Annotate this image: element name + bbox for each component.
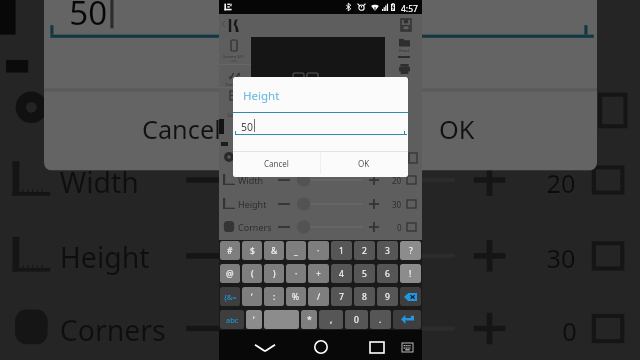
- staticText: Height: [60, 237, 151, 275]
- staticText: 0: [354, 314, 359, 326]
- button[interactable]: !: [400, 264, 421, 283]
- button[interactable]: Decrease Height: [275, 198, 292, 210]
- button[interactable]: 5: [354, 264, 375, 283]
- button[interactable]: 9: [377, 287, 398, 306]
- button[interactable]: Cancel: [44, 91, 319, 161]
- button[interactable]: Home: [308, 335, 333, 360]
- staticText: Width: [238, 174, 264, 186]
- staticText: _: [294, 245, 298, 257]
- staticText: &: [271, 245, 278, 257]
- button[interactable]: ·: [286, 264, 306, 283]
- button[interactable]: Decrease Corners: [177, 310, 230, 347]
- button[interactable]: Decrease Height: [177, 237, 230, 275]
- staticText: 50: [241, 120, 254, 134]
- staticText: Transf: [225, 82, 238, 88]
- button[interactable]: 2: [354, 241, 375, 260]
- button[interactable]: [400, 287, 421, 306]
- button[interactable]: OK: [320, 152, 408, 174]
- button[interactable]: Corners: [0, 291, 640, 360]
- staticText: Height: [243, 88, 280, 104]
- staticText: /: [317, 291, 321, 303]
- staticText: abc: [226, 315, 239, 325]
- staticText: 9: [385, 291, 390, 303]
- button[interactable]: Toggle Height: [587, 234, 625, 275]
- button[interactable]: (: [242, 264, 262, 283]
- button[interactable]: @: [220, 264, 240, 283]
- button[interactable]: Increase Corners: [467, 306, 508, 347]
- button[interactable]: ʼ: [242, 287, 262, 306]
- button[interactable]: $: [242, 241, 262, 260]
- button[interactable]: Increase Width: [367, 173, 380, 186]
- staticText: !: [409, 268, 412, 280]
- button[interactable]: Switch keyboard: [397, 336, 418, 358]
- button[interactable]: OK: [319, 91, 597, 161]
- button[interactable]: 6: [377, 264, 398, 283]
- button[interactable]: abc: [220, 310, 244, 329]
- button[interactable]: Save: [397, 16, 416, 35]
- staticText: *: [307, 314, 312, 326]
- button[interactable]: Decrease Width: [275, 174, 292, 186]
- button[interactable]: ·: [308, 241, 329, 260]
- button[interactable]: {&=: [220, 287, 240, 306]
- button[interactable]: Height: [219, 192, 422, 215]
- button[interactable]: Corners: [219, 215, 422, 238]
- staticText: Read: [399, 48, 409, 54]
- button[interactable]: [393, 310, 421, 329]
- button[interactable]: &: [264, 241, 284, 260]
- staticText: 30: [392, 199, 402, 210]
- button[interactable]: .: [370, 310, 391, 329]
- button[interactable]: :: [264, 287, 284, 306]
- button[interactable]: Toggle Corners: [587, 306, 625, 347]
- staticText: ·: [317, 245, 320, 257]
- staticText: +: [316, 268, 321, 280]
- button[interactable]: Cancel: [233, 152, 320, 174]
- button[interactable]: _: [286, 241, 306, 260]
- button[interactable]: %: [286, 287, 306, 306]
- staticText: {&=: [224, 292, 237, 302]
- button[interactable]: Toggle Height: [405, 197, 417, 210]
- button[interactable]: *: [301, 310, 317, 329]
- button[interactable]: Increase Width: [467, 158, 508, 199]
- button[interactable]: 8: [354, 287, 375, 306]
- button[interactable]: 7: [331, 287, 352, 306]
- button[interactable]: #: [220, 241, 240, 260]
- staticText: :: [273, 291, 276, 303]
- button[interactable]: Toggle Corners: [405, 220, 417, 233]
- button[interactable]: Increase Height: [367, 197, 380, 210]
- staticText: ʼ: [253, 314, 255, 326]
- staticText: 20: [546, 164, 578, 199]
- button[interactable]: 4: [331, 264, 352, 283]
- button[interactable]: Navigate up: [220, 15, 241, 36]
- staticText: 5: [362, 268, 367, 280]
- staticText: .: [379, 314, 382, 326]
- staticText: ): [273, 268, 276, 280]
- button[interactable]: Toggle Width: [587, 158, 625, 199]
- staticText: 4:57: [401, 3, 418, 15]
- button[interactable]: 0: [345, 310, 368, 329]
- button[interactable]: ,: [319, 310, 343, 329]
- button[interactable]: Width: [0, 142, 640, 215]
- button[interactable]: Height: [0, 218, 640, 291]
- staticText: %: [292, 291, 300, 303]
- button[interactable]: 3: [377, 241, 398, 260]
- button[interactable]: Increase Corners: [367, 220, 380, 233]
- button[interactable]: ?: [400, 241, 421, 260]
- button[interactable]: Decrease Width: [177, 161, 230, 199]
- button[interactable]: ʼ: [246, 310, 262, 329]
- button[interactable]: Decrease Corners: [275, 221, 292, 233]
- button[interactable]: 1: [331, 241, 352, 260]
- button[interactable]: Width: [219, 168, 422, 191]
- staticText: ,: [330, 314, 333, 326]
- staticText: #: [227, 245, 233, 257]
- staticText: @: [226, 268, 234, 280]
- button[interactable]: Recent apps: [364, 335, 389, 360]
- button[interactable]: Hide keyboard: [249, 337, 281, 359]
- staticText: 20: [392, 175, 402, 186]
- button[interactable]: ): [264, 264, 284, 283]
- button[interactable]: Toggle Width: [405, 173, 417, 186]
- button[interactable]: [264, 310, 299, 329]
- staticText: ?: [409, 245, 413, 257]
- button[interactable]: /: [308, 287, 329, 306]
- button[interactable]: Increase Height: [467, 234, 508, 275]
- button[interactable]: +: [308, 264, 329, 283]
